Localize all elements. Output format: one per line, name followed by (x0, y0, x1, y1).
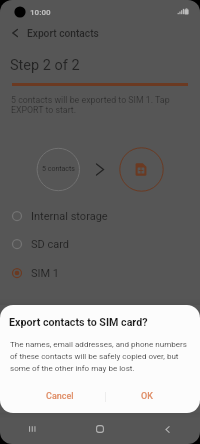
staticText: The names, email addresses, and phone nu… (10, 340, 198, 373)
staticText: SD card (31, 238, 70, 251)
button[interactable]: Navigate up (4, 23, 26, 43)
staticText: OK (141, 391, 153, 402)
staticText: 10:00 (30, 8, 51, 17)
button[interactable]: OK (106, 380, 200, 413)
button[interactable]: Cancel (0, 380, 105, 413)
button[interactable]: SD card (0, 230, 200, 258)
staticText: Cancel (46, 391, 74, 402)
staticText: Export contacts to SIM card? (9, 316, 148, 329)
button[interactable]: SIM 1 (0, 259, 200, 287)
staticText: Internal storage (31, 210, 108, 223)
staticText: Step 2 of 2 (10, 57, 80, 74)
button[interactable]: Back (155, 417, 179, 441)
button[interactable]: Recent apps (21, 417, 45, 441)
staticText: Export contacts (27, 28, 99, 40)
staticText: 5 contacts (40, 165, 77, 173)
staticText: SIM 1 (31, 267, 60, 280)
button[interactable]: Home (88, 417, 112, 441)
button[interactable]: Internal storage (0, 202, 200, 230)
staticText: 5 contacts will be exported to SIM 1. Ta… (11, 95, 196, 115)
